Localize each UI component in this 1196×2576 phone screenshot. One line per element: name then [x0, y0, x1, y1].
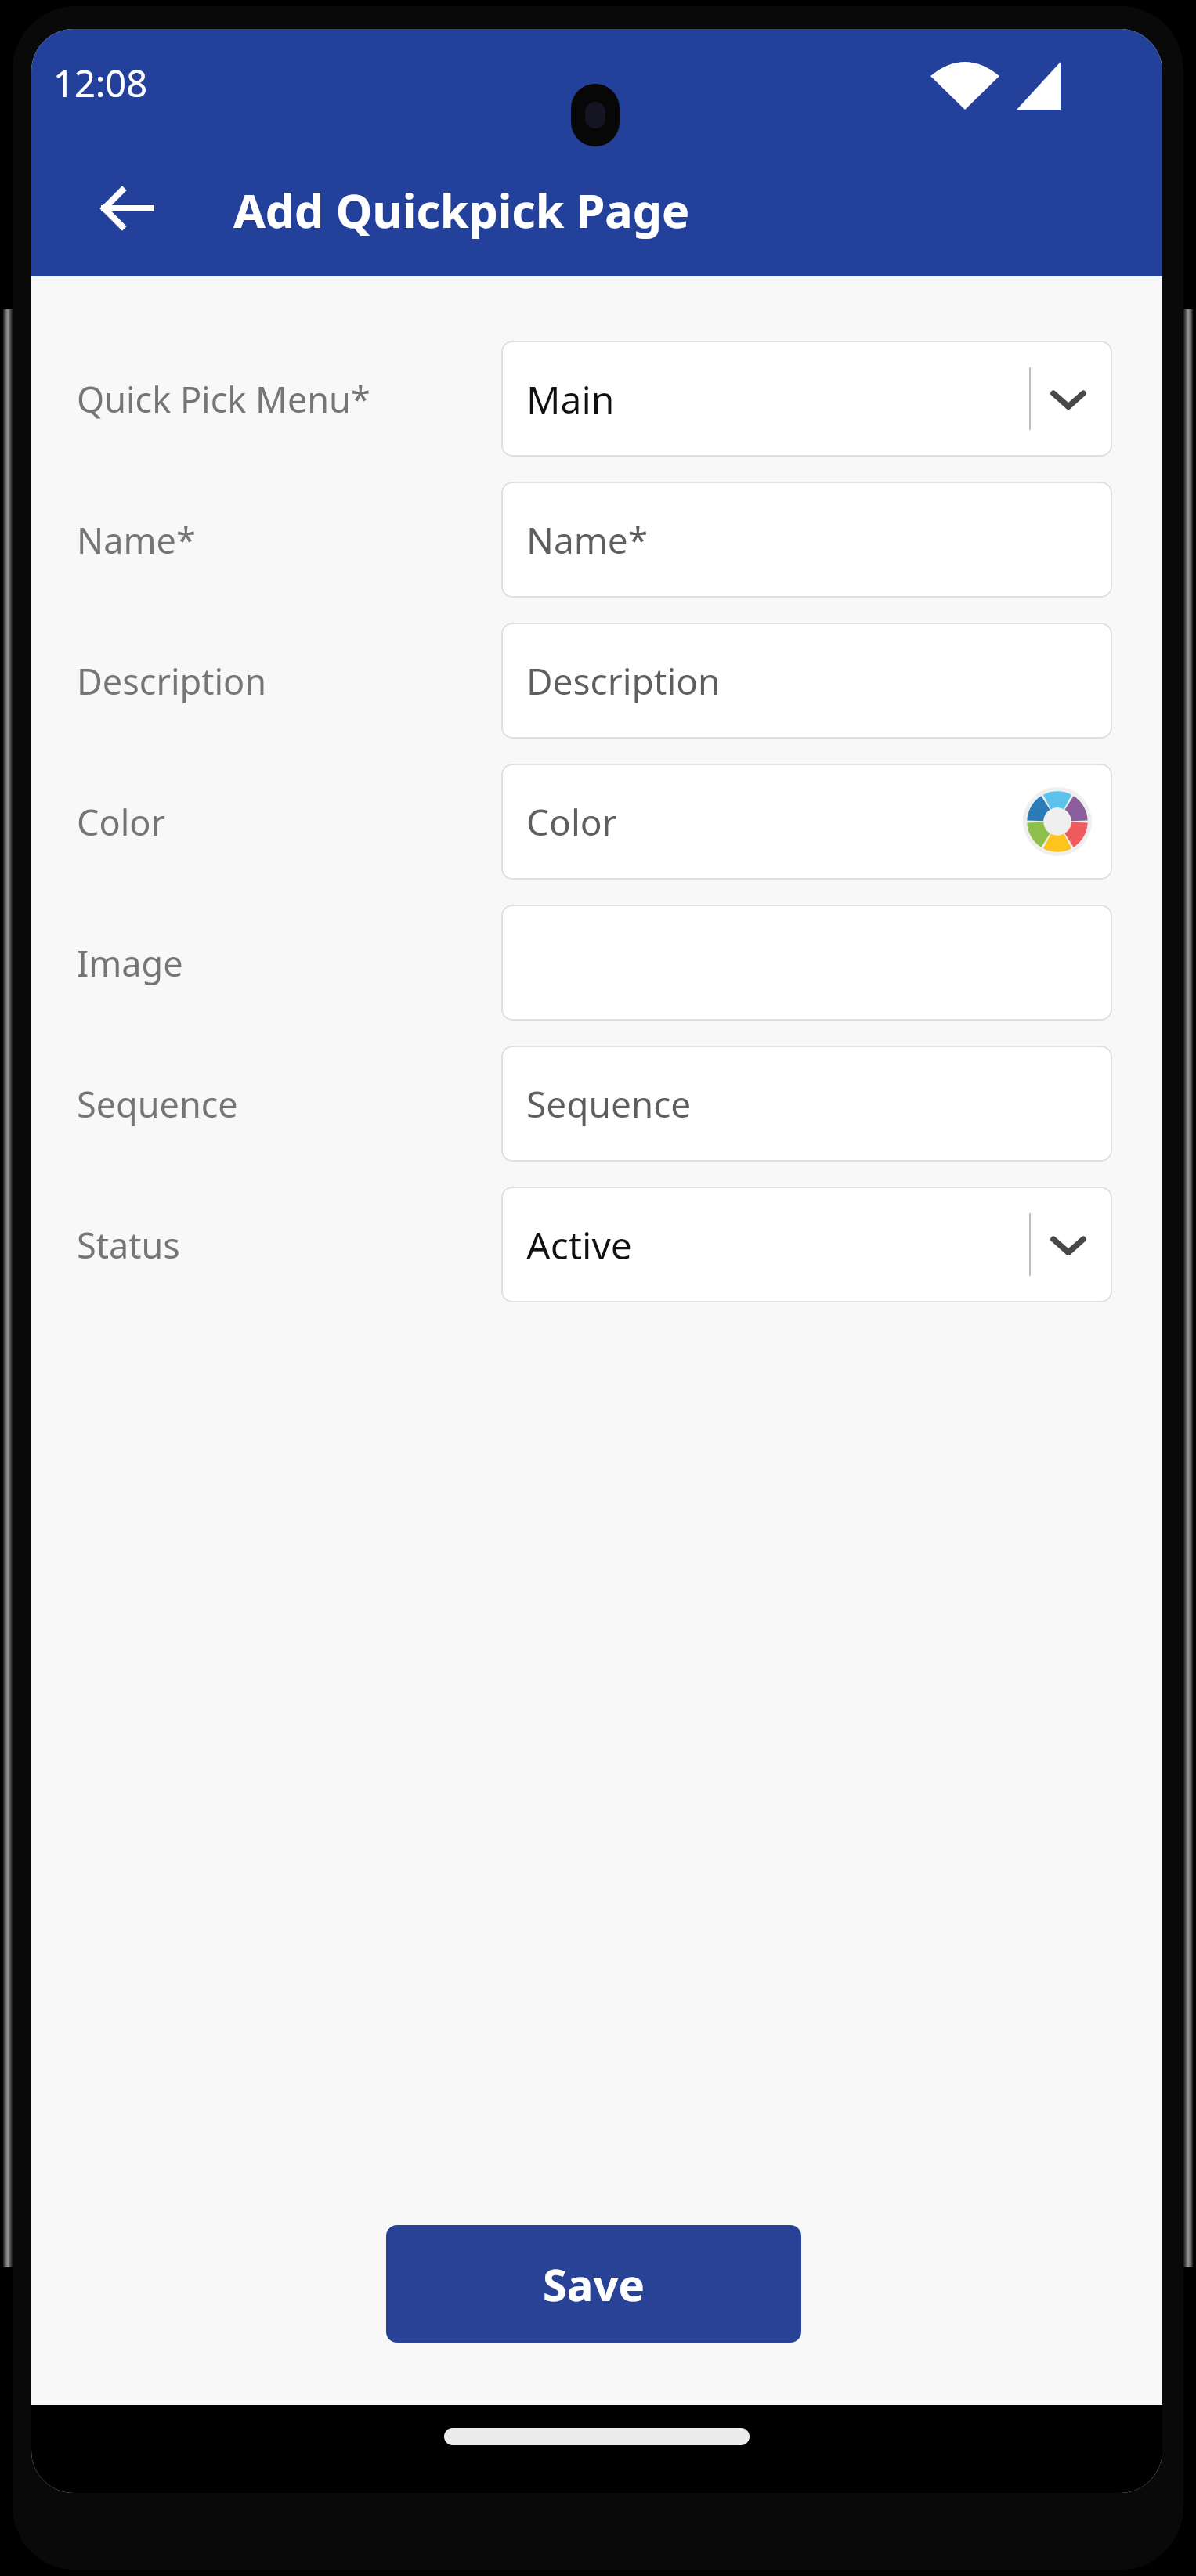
staticText: Status	[77, 1221, 180, 1269]
button[interactable]: Sequence	[501, 1046, 1112, 1162]
staticText: Description	[77, 657, 267, 705]
button[interactable]: Save	[386, 2225, 801, 2343]
staticText: Name*	[526, 515, 649, 565]
staticText: Color	[526, 797, 617, 847]
staticText: Sequence	[77, 1080, 238, 1128]
staticText: Active	[526, 1219, 632, 1270]
button[interactable]: Color	[501, 764, 1112, 880]
staticText: Sequence	[526, 1079, 692, 1129]
button[interactable]: Back	[89, 171, 164, 246]
staticText: Save	[543, 2254, 645, 2314]
staticText: Color	[77, 798, 166, 846]
button[interactable]: Main	[501, 341, 1112, 457]
button[interactable]	[501, 905, 1112, 1021]
staticText: 12:08	[53, 58, 148, 108]
button[interactable]: Description	[501, 623, 1112, 739]
staticText: Image	[77, 939, 183, 987]
button[interactable]: Active	[501, 1187, 1112, 1302]
staticText: Name*	[77, 516, 196, 564]
staticText: Quick Pick Menu*	[77, 375, 370, 423]
staticText: Main	[526, 374, 615, 425]
staticText: Add Quickpick Page	[233, 179, 690, 241]
button[interactable]: Name*	[501, 482, 1112, 598]
other: Pick colour	[1023, 787, 1092, 856]
staticText: Description	[526, 656, 721, 706]
